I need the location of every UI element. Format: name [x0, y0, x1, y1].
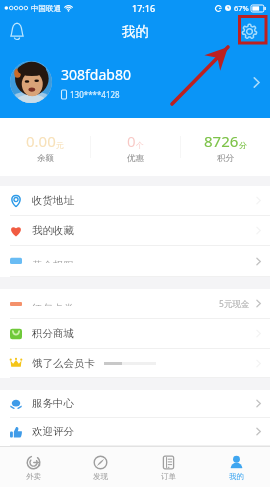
button[interactable]: 欢迎评分	[0, 418, 270, 445]
staticText: 8726	[204, 131, 239, 151]
button[interactable]: Settings	[239, 21, 259, 41]
button[interactable]: 订单	[134, 447, 202, 487]
staticText: 我的	[122, 23, 149, 40]
staticText: 外卖	[26, 472, 41, 481]
staticText: 积分商城	[32, 327, 74, 340]
button[interactable]: 我的	[202, 447, 270, 487]
button[interactable]: 积分商城	[0, 319, 270, 348]
staticText: 308fdab80	[61, 65, 131, 84]
staticText: 个	[136, 140, 144, 150]
button[interactable]: 0.00	[0, 118, 90, 176]
button[interactable]: 饿了么会员卡	[0, 349, 270, 377]
staticText: 优惠	[127, 153, 144, 164]
button[interactable]: 8726	[181, 118, 270, 176]
button[interactable]: Notifications	[5, 19, 29, 43]
staticText: 订单	[161, 472, 176, 481]
staticText: 饿了么会员卡	[32, 357, 95, 370]
button[interactable]: 外卖	[0, 447, 67, 487]
staticText: 5元现金	[219, 298, 250, 310]
staticText: 欢迎评分	[32, 425, 74, 438]
staticText: 发现	[93, 472, 108, 481]
staticText: 我的收藏	[32, 224, 74, 237]
staticText: 分	[239, 140, 247, 150]
staticText: 黄金权限	[32, 259, 74, 263]
button[interactable]: 服务中心	[0, 390, 270, 417]
button[interactable]: 发现	[67, 447, 134, 487]
button[interactable]: 黄金权限	[0, 246, 270, 276]
staticText: 元	[56, 140, 64, 150]
button[interactable]: 红包卡券	[0, 289, 270, 318]
staticText: 余额	[37, 153, 54, 164]
button[interactable]: 308fdab80	[0, 46, 270, 118]
button[interactable]: 0	[91, 118, 180, 176]
staticText: 130****4128	[70, 89, 120, 100]
staticText: 服务中心	[32, 397, 74, 410]
staticText: 0	[127, 131, 136, 151]
staticText: 67%	[234, 3, 249, 13]
staticText: 17:16	[132, 2, 156, 14]
staticText: 我的	[229, 472, 244, 481]
button[interactable]: 我的收藏	[0, 216, 270, 245]
staticText: 红包卡券	[32, 302, 74, 306]
button[interactable]: 收货地址	[0, 186, 270, 215]
staticText: 中国联通	[31, 4, 61, 13]
staticText: 收货地址	[32, 194, 74, 207]
staticText: 0.00	[26, 131, 56, 151]
staticText: 积分	[217, 153, 234, 164]
